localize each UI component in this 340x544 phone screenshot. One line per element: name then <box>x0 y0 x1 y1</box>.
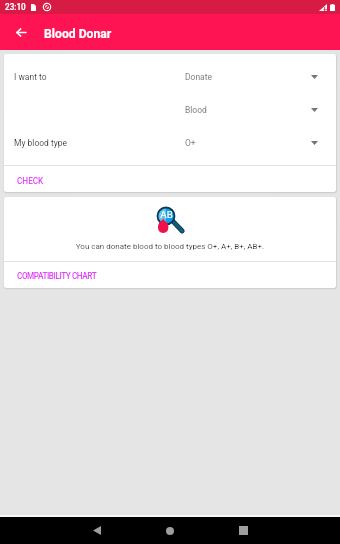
button[interactable]: My blood type <box>4 126 336 159</box>
other: Battery <box>330 4 335 11</box>
staticText: COMPATIBILITY CHART <box>17 271 97 281</box>
button[interactable]: Blood <box>4 93 336 126</box>
button[interactable]: Home <box>156 517 184 544</box>
staticText: Donate <box>185 72 213 82</box>
button[interactable]: Back <box>83 517 111 544</box>
staticText: You can donate blood to blood types O+, … <box>4 242 336 251</box>
staticText: Blood Donar <box>44 27 112 41</box>
other: SIM <box>31 4 36 11</box>
button[interactable]: COMPATIBILITY CHART <box>4 262 336 288</box>
staticText: I want to <box>14 72 47 82</box>
staticText: Blood <box>185 105 207 115</box>
staticText: AB <box>158 209 175 220</box>
button[interactable]: Recent apps <box>229 517 257 544</box>
staticText: O+ <box>185 138 196 148</box>
staticText: My blood type <box>14 138 68 148</box>
button[interactable]: CHECK <box>4 166 336 192</box>
button[interactable]: I want to <box>4 60 336 93</box>
button[interactable]: Back <box>8 20 33 45</box>
staticText: CHECK <box>17 176 44 186</box>
staticText: 23:10 <box>5 2 26 12</box>
other: Do not disturb <box>43 3 51 11</box>
other: Signal <box>319 4 327 11</box>
